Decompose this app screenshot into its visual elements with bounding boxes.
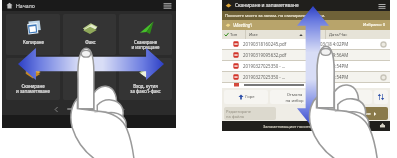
staticText: \Meeting\	[233, 22, 252, 28]
button[interactable]: Редактиране на файла	[224, 107, 276, 120]
button[interactable]: 20190327025350 - …	[222, 72, 390, 82]
button[interactable]: Следваща	[117, 104, 127, 114]
button[interactable]: Вход. кутия за факс/I-факс	[119, 58, 172, 100]
button[interactable]: 20190327025350 - …	[222, 61, 390, 71]
button[interactable]: Сканиране и изпращане	[119, 14, 172, 55]
staticText: …иране	[339, 94, 355, 100]
button[interactable]: Детайли	[380, 41, 387, 48]
button[interactable]	[63, 58, 116, 100]
button[interactable]: Детайли	[380, 74, 387, 81]
button[interactable]: Сортиране	[374, 90, 388, 104]
button[interactable]: Меню	[158, 0, 176, 11]
staticText: Сканиране и запаметяване	[235, 2, 299, 9]
button[interactable]: Копиране	[6, 14, 60, 55]
button[interactable]: Горе	[224, 90, 268, 104]
staticText: Сканиране и изпращане	[131, 39, 160, 50]
button[interactable]: …нирание	[338, 107, 388, 120]
button[interactable]: Сканиране и запаметяване	[6, 58, 60, 100]
staticText: 20190318160245.pdf	[243, 41, 287, 47]
button[interactable]: Предишна	[51, 104, 61, 114]
staticText: 03/26 4:54PM	[320, 63, 349, 69]
staticText: Горе	[245, 94, 255, 100]
staticText: Запаметяващият носител е свободен.	[263, 124, 337, 129]
staticText: 20190327025350 - …	[243, 63, 286, 69]
staticText: Факс	[85, 39, 96, 45]
staticText: Име	[249, 32, 258, 38]
staticText: Копиране	[23, 39, 44, 45]
staticText: Вход. кутия за факс/I-факс	[130, 83, 161, 94]
button[interactable]: Меню	[374, 0, 390, 11]
staticText: Начало	[16, 2, 35, 9]
staticText: Избрано: 0	[363, 22, 386, 28]
staticText: 03/19 9:56AM	[320, 52, 349, 58]
staticText: …нирание	[350, 111, 371, 117]
button[interactable]: 20190319095632.pdf	[222, 50, 390, 60]
button[interactable]: …иране	[321, 90, 372, 104]
staticText: 03/18 4:02PM	[320, 41, 349, 47]
staticText: Сканиране и запаметяване	[16, 83, 50, 94]
button[interactable]: Факс	[63, 14, 116, 55]
button[interactable]: 20190318160245.pdf	[222, 39, 390, 49]
staticText: 20190327025350 - …	[243, 74, 286, 80]
staticText: Редактиране на файла	[226, 109, 251, 119]
staticText: 03/26 4:54PM	[320, 74, 349, 80]
staticText: Тип	[230, 32, 238, 38]
staticText: Посочете място за запам. на сканираните …	[225, 13, 326, 19]
staticText: 20190319095632.pdf	[243, 52, 287, 58]
staticText: Отмяна на избор	[285, 92, 304, 103]
button[interactable]: Отмяна на избор	[270, 90, 319, 104]
staticText: Дата/Час	[329, 32, 348, 38]
